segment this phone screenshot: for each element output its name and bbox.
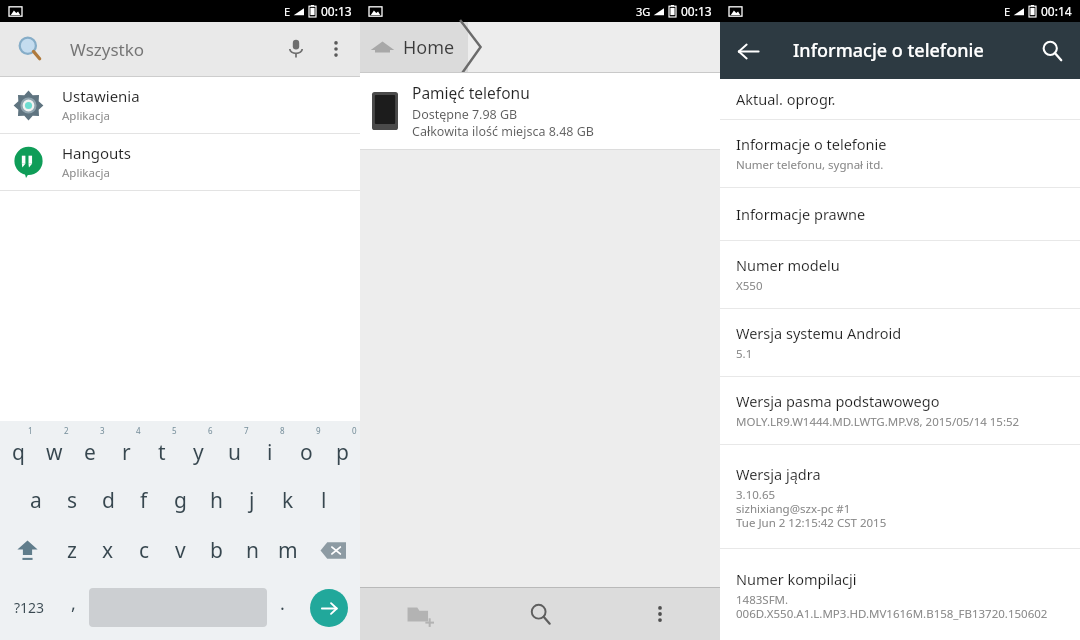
button[interactable]: j [234,475,270,525]
staticText: r [122,438,131,467]
staticText: b [210,536,223,565]
button[interactable]: 2 [36,421,72,475]
button[interactable]: s [54,475,90,525]
staticText: q [12,438,25,467]
staticText: 1 [28,425,33,436]
button[interactable]: Search [480,588,600,640]
button[interactable]: Pamięć telefonu [360,73,720,149]
staticText: Informacje prawne [736,204,866,224]
button[interactable]: f [126,475,162,525]
button[interactable]: m [270,525,306,575]
staticText: Wersja jądra [736,464,821,484]
button[interactable]: More options [316,29,356,69]
button[interactable]: 0 [324,421,360,475]
staticText: Home [403,35,455,60]
button[interactable]: Wszystko [0,22,360,76]
button[interactable]: Numer kompilacji [720,549,1080,640]
staticText: 2 [64,425,69,436]
button[interactable]: 4 [108,421,144,475]
staticText: g [174,486,187,515]
button[interactable]: Aktual. oprogr. [720,79,1080,119]
staticText: y [193,438,204,467]
button[interactable]: 8 [252,421,288,475]
staticText: 00:13 [681,3,712,19]
button[interactable]: New folder [360,588,480,640]
staticText: v [175,536,186,565]
button[interactable]: h [198,475,234,525]
staticText: e [84,438,96,467]
staticText: 7 [244,425,249,436]
staticText: c [139,536,150,565]
button[interactable]: d [90,475,126,525]
staticText: d [102,486,115,515]
staticText: f [140,486,148,515]
button[interactable]: x [90,525,126,575]
staticText: Całkowita ilość miejsca 8.48 GB [412,123,594,140]
button[interactable]: Wersja jądra [720,445,1080,548]
staticText: , [71,591,76,616]
button[interactable]: Home [370,35,455,60]
button[interactable]: v [162,525,198,575]
staticText: 3 [100,425,105,436]
button[interactable]: 9 [288,421,324,475]
button[interactable]: Wersja systemu Android [720,309,1080,376]
button[interactable]: Shift [0,525,54,575]
button[interactable]: b [198,525,234,575]
staticText: o [300,438,313,467]
staticText: . [280,591,285,616]
button[interactable]: Hangouts [0,134,360,190]
staticText: z [67,536,77,565]
staticText: Wersja pasma podstawowego [736,391,940,411]
staticText: 3.10.65 sizhixiang@szx-pc #1 Tue Jun 2 1… [736,487,887,530]
staticText: 5 [172,425,177,436]
staticText: t [158,438,166,467]
button[interactable]: c [126,525,162,575]
button[interactable]: More options [600,588,720,640]
staticText: Informacje o telefonie [736,134,887,154]
staticText: 4 [136,425,141,436]
button[interactable]: , [58,575,89,640]
button[interactable]: z [54,525,90,575]
button[interactable]: Wersja pasma podstawowego [720,377,1080,444]
staticText: Aplikacja [62,165,110,181]
staticText: l [321,486,327,515]
staticText: x [102,536,114,565]
button[interactable]: a [18,475,54,525]
staticText: Ustawienia [62,86,140,106]
button[interactable]: Search [1028,27,1076,75]
staticText: Numer modelu [736,255,840,275]
button[interactable]: 3 [72,421,108,475]
staticText: Aktual. oprogr. [736,89,836,109]
button[interactable]: . [267,575,298,640]
staticText: i [267,438,273,467]
button[interactable]: Numer modelu [720,241,1080,308]
button[interactable]: 1 [0,421,36,475]
button[interactable]: 5 [144,421,180,475]
staticText: k [282,486,294,515]
button[interactable]: g [162,475,198,525]
button[interactable]: ?123 [0,575,58,640]
button[interactable]: k [270,475,306,525]
button[interactable]: n [234,525,270,575]
button[interactable]: 6 [180,421,216,475]
staticText: Numer telefonu, sygnał itd. [736,157,884,173]
button[interactable]: Informacje o telefonie [720,120,1080,187]
staticText: X550 [736,278,763,294]
staticText: 0 [352,425,357,436]
staticText: h [210,486,223,515]
button[interactable]: Informacje prawne [720,188,1080,240]
button[interactable]: Back [724,27,772,75]
staticText: Dostępne 7.98 GB [412,106,518,123]
staticText: 6 [208,425,213,436]
button[interactable]: Voice search [276,29,316,69]
button[interactable]: Backspace [306,525,360,575]
button[interactable]: Enter [298,575,360,640]
button[interactable] [360,22,468,72]
staticText: 1483SFM. 006D.X550.A1.L.MP3.HD.MV1616M.B… [736,592,1048,621]
button[interactable]: l [306,475,342,525]
button[interactable]: 7 [216,421,252,475]
button[interactable]: Ustawienia [0,77,360,133]
staticText: MOLY.LR9.W1444.MD.LWTG.MP.V8, 2015/05/14… [736,414,1020,430]
staticText: 00:14 [1041,3,1072,19]
